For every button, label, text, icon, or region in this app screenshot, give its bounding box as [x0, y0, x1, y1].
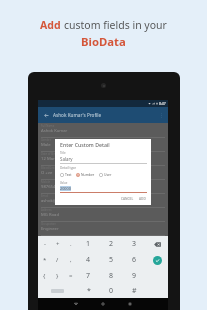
button[interactable]: * — [77, 284, 100, 298]
button[interactable]: Back — [72, 300, 80, 308]
button[interactable]: 0 — [100, 284, 123, 298]
staticText: ADD — [139, 197, 146, 201]
button[interactable]: CANCEL — [120, 196, 135, 202]
staticText: O +ve — [41, 170, 53, 176]
button[interactable]: Back — [41, 110, 51, 120]
staticText: Blood Group — [41, 166, 58, 170]
button[interactable]: Number — [76, 172, 95, 177]
staticText: { — [43, 272, 46, 280]
staticText: User — [104, 172, 112, 177]
staticText: Occupation — [41, 222, 57, 226]
staticText: Engineer — [41, 226, 59, 232]
staticText: Ashok Kumar — [41, 128, 68, 134]
staticText: Email — [41, 194, 49, 198]
staticText: 9 — [132, 271, 137, 281]
staticText: 0 — [109, 286, 114, 296]
staticText: + — [56, 240, 60, 248]
staticText: BioData — [81, 34, 126, 49]
staticText: Value — [60, 181, 68, 185]
button[interactable]: / — [51, 252, 64, 268]
staticText: 9876543210 — [41, 184, 65, 190]
button[interactable]: } — [51, 268, 64, 284]
staticText: . — [70, 240, 72, 248]
staticText: } — [56, 272, 59, 280]
button[interactable]: 1 — [77, 236, 100, 252]
button[interactable]: + — [51, 236, 64, 252]
staticText: Add — [40, 18, 64, 32]
button[interactable]: 8 — [100, 268, 123, 284]
staticText: 1 — [86, 239, 91, 249]
button[interactable]: ADD — [138, 196, 147, 202]
staticText: - — [44, 240, 46, 248]
button[interactable]: Home — [99, 300, 107, 308]
button[interactable]: = — [64, 268, 77, 284]
staticText: CANCEL — [121, 197, 134, 201]
staticText: ashok@mail.com — [41, 198, 75, 204]
button[interactable]: { — [38, 268, 51, 284]
staticText: Address — [41, 208, 52, 212]
button[interactable]: * — [38, 252, 51, 268]
staticText: custom fields in your — [64, 18, 167, 32]
staticText: 6 — [132, 255, 137, 265]
staticText: Text — [65, 172, 72, 177]
button[interactable]: User — [99, 172, 112, 177]
staticText: Gender — [41, 138, 51, 142]
button[interactable]: - — [38, 236, 51, 252]
staticText: * — [43, 256, 47, 264]
staticText: , — [70, 256, 72, 264]
staticText: Salary — [60, 156, 73, 162]
button[interactable]: Backspace — [146, 236, 168, 252]
staticText: 8:47 — [159, 101, 166, 106]
button[interactable]: # — [123, 284, 146, 298]
button[interactable]: 9 — [123, 268, 146, 284]
staticText: Enter Custom Detail — [60, 141, 110, 148]
button[interactable]: 3 — [123, 236, 146, 252]
staticText: 3 — [132, 239, 137, 249]
button[interactable] — [51, 284, 64, 298]
staticText: Detail type — [60, 166, 77, 170]
button[interactable]: Done — [146, 252, 168, 268]
button[interactable]: Text — [60, 172, 72, 177]
button[interactable]: 4 — [77, 252, 100, 268]
staticText: Number — [81, 172, 95, 177]
staticText: Ashok Kumar's Profile — [53, 112, 102, 118]
staticText: * — [87, 286, 91, 296]
staticText: Mobile — [41, 180, 50, 184]
staticText: 4 — [86, 255, 91, 265]
button[interactable]: , — [64, 252, 77, 268]
staticText: 20000 — [60, 186, 71, 191]
staticText: Male — [41, 142, 51, 148]
staticText: / — [56, 256, 59, 264]
button[interactable]: 2 — [100, 236, 123, 252]
button[interactable]: 6 — [123, 252, 146, 268]
staticText: # — [132, 286, 137, 296]
button[interactable]: 7 — [77, 268, 100, 284]
button[interactable]: . — [64, 236, 77, 252]
staticText: 12 Mar 1988 — [41, 156, 66, 162]
staticText: Date of Birth — [41, 152, 58, 156]
staticText: Full Name — [41, 124, 55, 128]
staticText: Title — [60, 151, 66, 155]
button[interactable]: Recents — [126, 300, 134, 308]
staticText: 2 — [109, 239, 114, 249]
staticText: MG Road — [41, 212, 59, 218]
staticText: 8 — [109, 271, 114, 281]
staticText: 7 — [86, 271, 91, 281]
button[interactable]: 5 — [100, 252, 123, 268]
staticText: = — [69, 272, 73, 280]
staticText: 5 — [109, 255, 114, 265]
